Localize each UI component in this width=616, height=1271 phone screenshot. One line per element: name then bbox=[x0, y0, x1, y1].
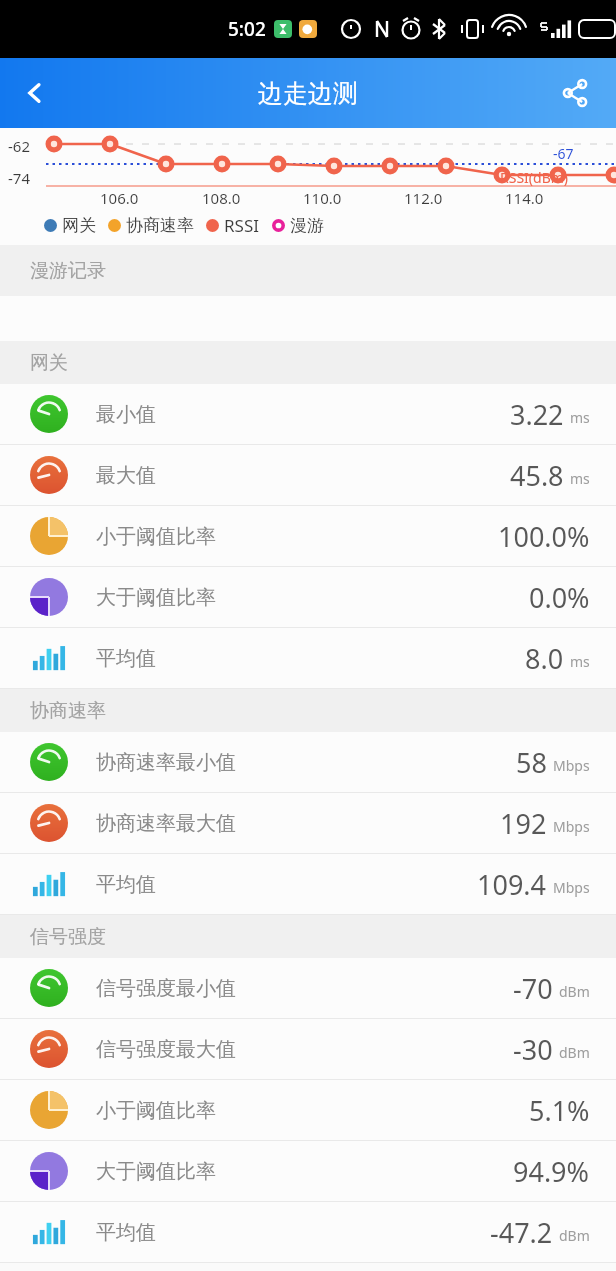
staticText: 5.1% bbox=[529, 1092, 590, 1129]
button[interactable]: 小于阈值比率 bbox=[0, 1080, 616, 1140]
staticText: 小于阈值比率 bbox=[96, 524, 216, 549]
button[interactable]: 大于阈值比率 bbox=[0, 567, 616, 627]
button[interactable]: 信号强度最小值 bbox=[0, 958, 616, 1018]
staticText: 3.22 bbox=[510, 396, 564, 433]
staticText: 45.8 bbox=[510, 457, 564, 494]
staticText: 最小值 bbox=[96, 402, 156, 427]
staticText: 平均值 bbox=[96, 1220, 156, 1245]
staticText: 漫游 bbox=[290, 215, 324, 236]
staticText: 协商速率最大值 bbox=[96, 811, 236, 836]
staticText: 112.0 bbox=[404, 188, 505, 208]
staticText: 信号强度 bbox=[30, 925, 106, 949]
button[interactable]: 协商速率最大值 bbox=[0, 793, 616, 853]
staticText: -67 bbox=[553, 144, 574, 163]
staticText: 100.0% bbox=[498, 518, 590, 555]
staticText: 0.0% bbox=[529, 579, 590, 616]
staticText: 106.0 bbox=[100, 188, 202, 208]
button[interactable]: Share bbox=[548, 66, 602, 120]
staticText: -30 bbox=[513, 1031, 553, 1068]
staticText: -62 bbox=[8, 136, 30, 156]
button[interactable]: 大于阈值比率 bbox=[0, 1141, 616, 1201]
button[interactable]: 最小值 bbox=[0, 384, 616, 444]
staticText: RSSI bbox=[224, 214, 260, 237]
staticText: dBm bbox=[559, 1226, 590, 1245]
staticText: 108.0 bbox=[202, 188, 303, 208]
staticText: 8.0 bbox=[525, 640, 564, 677]
staticText: -47.2 bbox=[490, 1214, 553, 1251]
button[interactable]: 平均值 bbox=[0, 628, 616, 688]
staticText: -70 bbox=[513, 970, 553, 1007]
staticText: 漫游记录 bbox=[30, 259, 106, 283]
staticText: 110.0 bbox=[303, 188, 404, 208]
staticText: 109.4 bbox=[477, 866, 547, 903]
staticText: 边走边测 bbox=[258, 78, 358, 109]
staticText: 协商速率 bbox=[30, 699, 106, 723]
staticText: ms bbox=[570, 469, 590, 488]
button[interactable]: 最大值 bbox=[0, 445, 616, 505]
staticText: ms bbox=[570, 408, 590, 427]
staticText: 5:02 bbox=[228, 16, 266, 42]
staticText: 网关 bbox=[30, 351, 68, 375]
button[interactable]: 平均值 bbox=[0, 1202, 616, 1262]
button[interactable]: 协商速率最小值 bbox=[0, 732, 616, 792]
button[interactable]: 信号强度最大值 bbox=[0, 1019, 616, 1079]
staticText: 平均值 bbox=[96, 872, 156, 897]
button[interactable]: 平均值 bbox=[0, 854, 616, 914]
staticText: Mbps bbox=[553, 756, 590, 775]
staticText: 协商速率最小值 bbox=[96, 750, 236, 775]
staticText: 小于阈值比率 bbox=[96, 1098, 216, 1123]
staticText: RSSI(dBm) bbox=[500, 168, 569, 187]
staticText: 大于阈值比率 bbox=[96, 1159, 216, 1184]
staticText: 大于阈值比率 bbox=[96, 585, 216, 610]
staticText: 最大值 bbox=[96, 463, 156, 488]
button[interactable]: Back bbox=[8, 66, 62, 120]
staticText: Mbps bbox=[553, 817, 590, 836]
staticText: 94.9% bbox=[513, 1153, 590, 1190]
staticText: -74 bbox=[8, 168, 30, 188]
button[interactable]: 小于阈值比率 bbox=[0, 506, 616, 566]
staticText: 114.0 bbox=[505, 188, 606, 208]
staticText: ms bbox=[570, 652, 590, 671]
staticText: 192 bbox=[500, 805, 547, 842]
staticText: dBm bbox=[559, 1043, 590, 1062]
staticText: Mbps bbox=[553, 878, 590, 897]
staticText: 平均值 bbox=[96, 646, 156, 671]
staticText: dBm bbox=[559, 982, 590, 1001]
staticText: 协商速率 bbox=[126, 215, 194, 236]
staticText: 网关 bbox=[62, 215, 96, 236]
staticText: 信号强度最小值 bbox=[96, 976, 236, 1001]
staticText: 58 bbox=[516, 744, 547, 781]
staticText: 信号强度最大值 bbox=[96, 1037, 236, 1062]
